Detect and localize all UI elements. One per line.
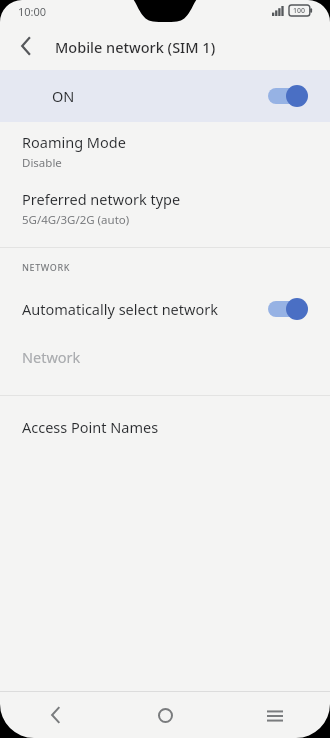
staticText: Mobile network (SIM 1) [55, 37, 216, 57]
staticText: Automatically select network [22, 299, 218, 319]
button[interactable]: Automatically select network [0, 292, 330, 326]
button[interactable]: Network [0, 342, 330, 372]
staticText: ON [52, 86, 75, 106]
button[interactable]: Back [8, 28, 44, 64]
staticText: Preferred network type [22, 189, 181, 209]
button[interactable]: Toggle on [268, 85, 308, 107]
button[interactable]: Roaming Mode [0, 132, 330, 171]
staticText: Disable [22, 155, 62, 171]
button[interactable]: Preferred network type [0, 189, 330, 228]
staticText: 10:00 [18, 4, 47, 19]
button[interactable]: Access Point Names [0, 412, 330, 442]
button[interactable]: ON [0, 70, 330, 122]
staticText: 5G/4G/3G/2G (auto) [22, 212, 130, 228]
button[interactable]: Home [110, 692, 220, 738]
staticText: NETWORK [22, 261, 71, 273]
staticText: Access Point Names [22, 417, 159, 437]
staticText: 100 [293, 6, 306, 16]
button[interactable]: Recent apps [220, 692, 330, 738]
staticText: Network [22, 347, 81, 367]
button[interactable]: Back [0, 692, 110, 738]
button[interactable]: Toggle on [268, 298, 308, 320]
staticText: Roaming Mode [22, 132, 126, 152]
